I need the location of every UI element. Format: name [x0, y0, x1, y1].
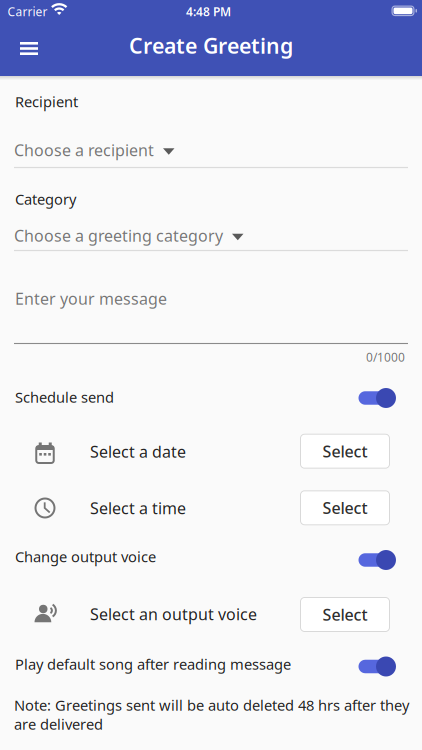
staticText: Carrier — [7, 3, 47, 19]
button[interactable]: Choose a recipient — [14, 130, 408, 170]
staticText: Select — [322, 441, 367, 462]
staticText: Select an output voice — [90, 603, 257, 625]
staticText: Choose a recipient — [14, 139, 154, 161]
staticText: are delivered — [14, 714, 103, 734]
staticText: Category — [15, 189, 76, 209]
staticText: Select — [322, 497, 367, 518]
button[interactable]: Select voice — [300, 597, 390, 632]
staticText: Change output voice — [15, 547, 156, 566]
button[interactable]: Enter your message — [14, 280, 408, 344]
staticText: Recipient — [15, 92, 78, 111]
staticText: Select a date — [90, 441, 186, 462]
button[interactable]: Change output voice — [357, 548, 395, 572]
button[interactable]: Play default song — [357, 654, 395, 678]
staticText: Play default song after reading message — [15, 654, 291, 674]
button[interactable]: Menu — [7, 26, 51, 70]
staticText: Schedule send — [15, 387, 114, 407]
staticText: Select — [322, 604, 367, 625]
staticText: Choose a greeting category — [14, 225, 223, 246]
button[interactable]: Choose a greeting category — [14, 215, 408, 255]
staticText: Create Greeting — [129, 31, 293, 60]
staticText: 0/1000 — [366, 349, 405, 365]
staticText: Select a time — [90, 497, 186, 519]
button[interactable]: Select time — [300, 490, 390, 525]
staticText: Note: Greetings sent will be auto delete… — [14, 695, 409, 715]
button[interactable]: Select date — [300, 434, 390, 469]
button[interactable]: Schedule send — [357, 386, 395, 410]
staticText: 4:48 PM — [186, 3, 231, 19]
staticText: Enter your message — [15, 288, 167, 309]
